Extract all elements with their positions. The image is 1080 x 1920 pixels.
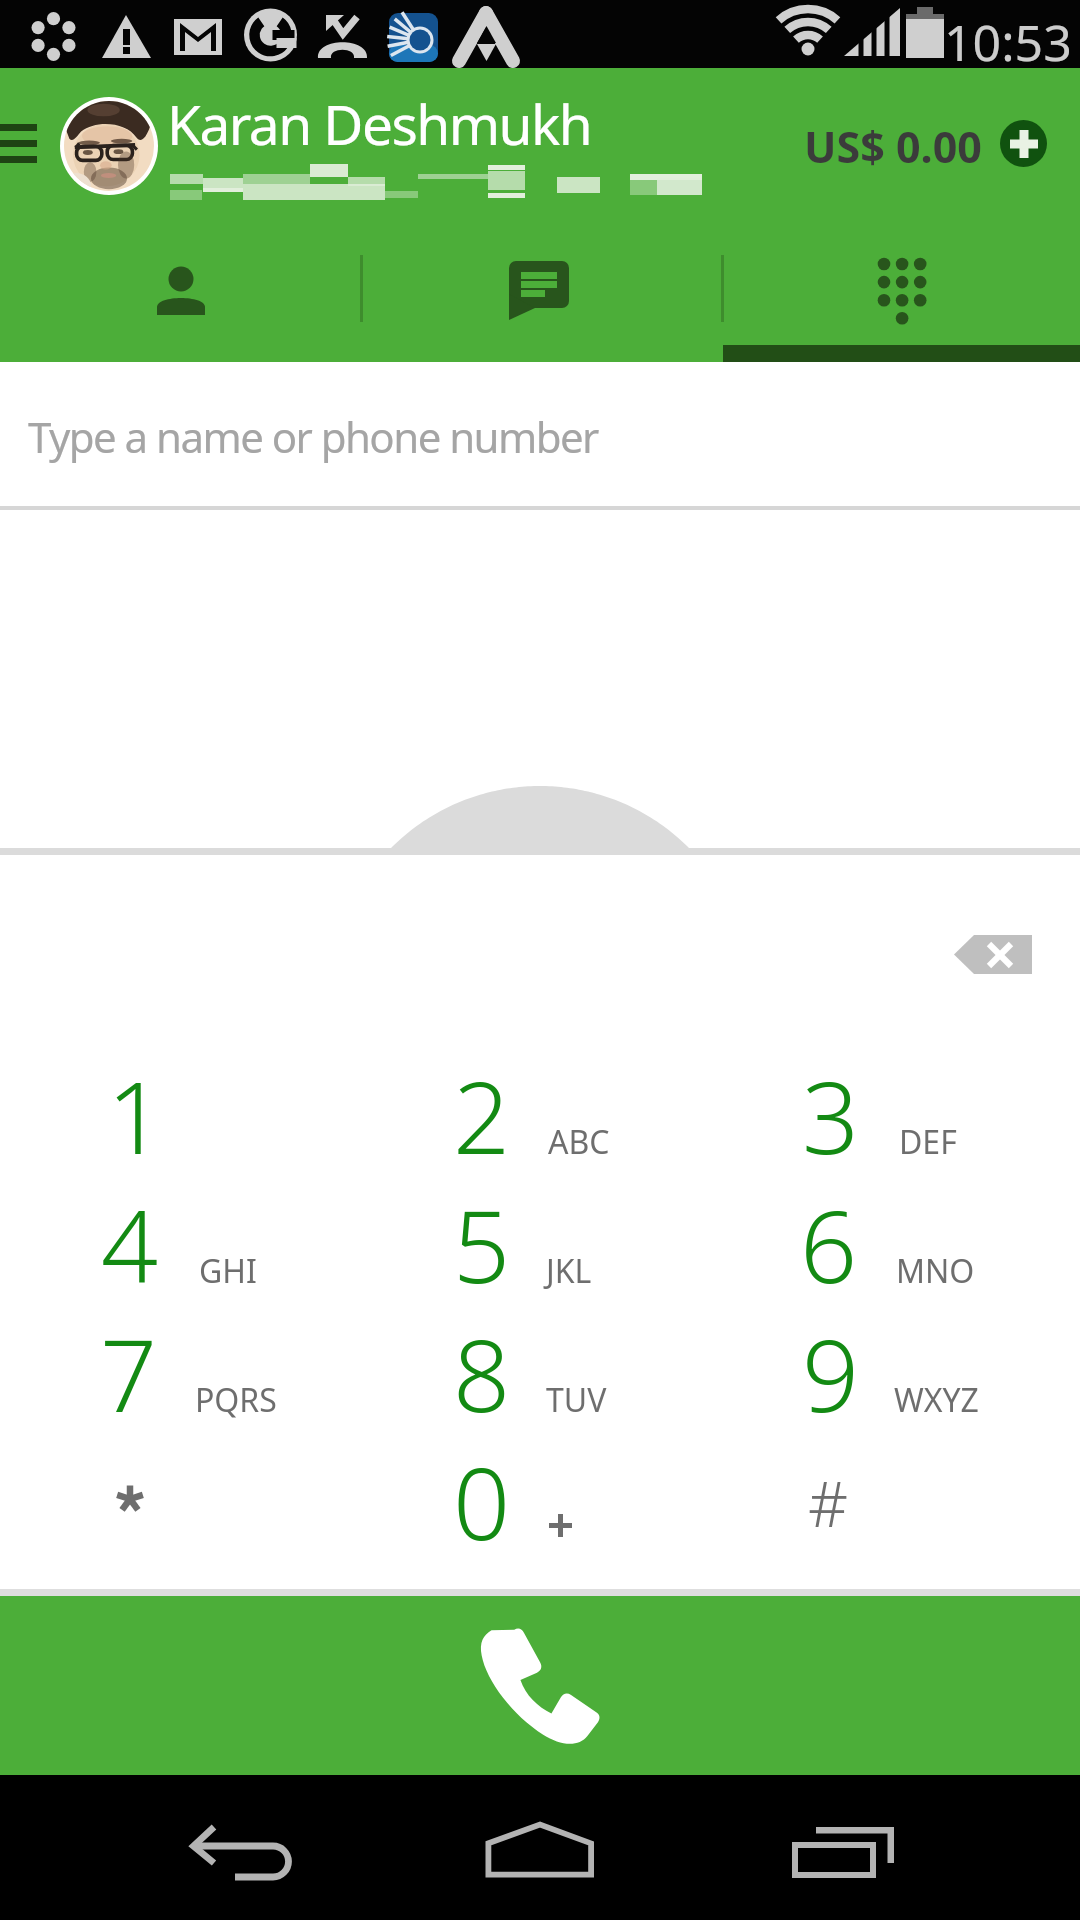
button[interactable]: 2	[360, 1027, 720, 1156]
staticText: WXYZ	[894, 1378, 979, 1422]
button[interactable]: Type a name or phone number	[0, 362, 1080, 506]
button[interactable]: US$ 0.00	[804, 117, 1047, 169]
button[interactable]: 4	[0, 1156, 360, 1285]
staticText: 4	[101, 1176, 159, 1305]
staticText: US$ 0.00	[804, 117, 982, 169]
staticText: 9	[802, 1305, 860, 1434]
button[interactable]: 8	[360, 1285, 720, 1414]
button[interactable]: Backspace	[920, 905, 1080, 1005]
staticText: 7	[100, 1305, 158, 1434]
button[interactable]: Back	[130, 1775, 330, 1920]
button[interactable]: Recent apps	[742, 1775, 942, 1920]
button[interactable]: Call	[0, 1596, 1080, 1775]
staticText: MNO	[896, 1249, 975, 1293]
staticText: 6	[800, 1176, 858, 1305]
staticText: DEF	[899, 1120, 957, 1164]
button[interactable]: Home	[440, 1775, 640, 1920]
button[interactable]: 9	[720, 1285, 1080, 1414]
staticText: ABC	[548, 1120, 610, 1164]
button[interactable]: Dialpad	[722, 225, 1080, 362]
staticText: Karan Deshmukh	[167, 86, 592, 161]
staticText: JKL	[546, 1249, 592, 1293]
staticText: 10:53	[944, 8, 1072, 76]
staticText: 1	[107, 1047, 165, 1176]
button[interactable]: 7	[0, 1285, 360, 1414]
staticText: Type a name or phone number	[28, 408, 598, 465]
staticText: 2	[453, 1047, 511, 1176]
staticText: #	[808, 1461, 849, 1545]
button[interactable]: 0	[360, 1413, 720, 1542]
staticText: PQRS	[195, 1378, 277, 1422]
staticText: 8	[453, 1305, 511, 1434]
button[interactable]: 1	[0, 1027, 360, 1156]
staticText: 3	[802, 1047, 860, 1176]
staticText: GHI	[199, 1249, 257, 1293]
button[interactable]	[0, 1413, 360, 1542]
button[interactable]: Messages	[360, 225, 722, 362]
button[interactable]: Open navigation drawer	[0, 96, 48, 196]
button[interactable]: #	[720, 1413, 1080, 1542]
button[interactable]: Contacts	[0, 225, 360, 362]
button[interactable]: 6	[720, 1156, 1080, 1285]
staticText: TUV	[546, 1378, 607, 1422]
button[interactable]: 3	[720, 1027, 1080, 1156]
staticText: 0	[453, 1433, 511, 1562]
button[interactable]: 5	[360, 1156, 720, 1285]
staticText: 5	[453, 1176, 511, 1305]
